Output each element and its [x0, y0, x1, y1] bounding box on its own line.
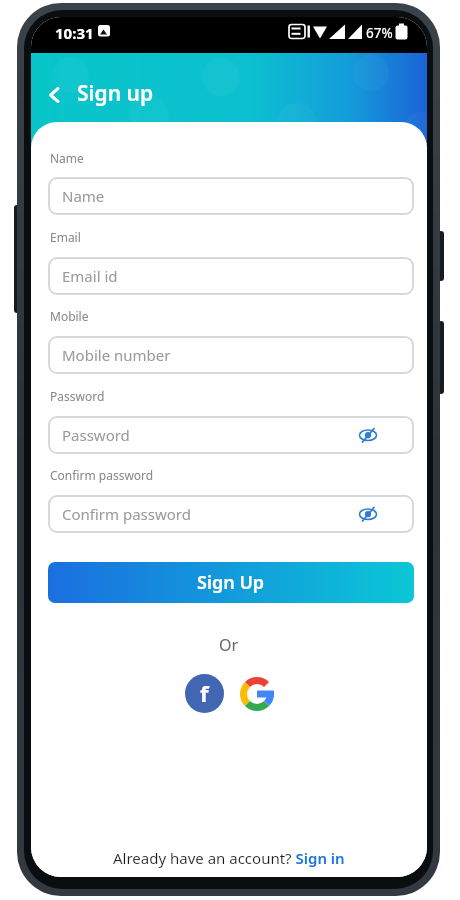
staticText: f: [200, 678, 209, 708]
staticText: Email: [50, 229, 81, 245]
staticText: Already have an account? Sign in: [113, 848, 345, 868]
staticText: Or: [219, 634, 239, 656]
staticText: Sign Up: [197, 570, 265, 595]
staticText: Mobile: [50, 308, 89, 324]
staticText: Name: [62, 186, 105, 206]
staticText: Password: [50, 388, 105, 404]
staticText: Sign up: [77, 79, 154, 108]
staticText: Confirm password: [50, 467, 154, 483]
staticText: Name: [50, 150, 84, 166]
staticText: 10:31: [55, 23, 94, 43]
staticText: Password: [62, 425, 130, 445]
staticText: Mobile number: [62, 345, 171, 365]
staticText: 67%: [366, 24, 393, 42]
staticText: Confirm password: [62, 504, 191, 524]
staticText: Email id: [62, 266, 118, 286]
